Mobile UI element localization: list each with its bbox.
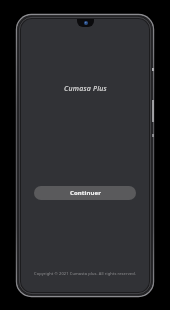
other: Volume down	[152, 134, 154, 137]
button[interactable]: Continuer	[34, 186, 136, 200]
staticText: Cumasa Plus	[64, 84, 107, 94]
staticText: Continuer	[70, 189, 101, 197]
other: Power	[152, 100, 154, 122]
staticText: Copyright © 2021 Cumasta plus. All right…	[34, 271, 136, 276]
